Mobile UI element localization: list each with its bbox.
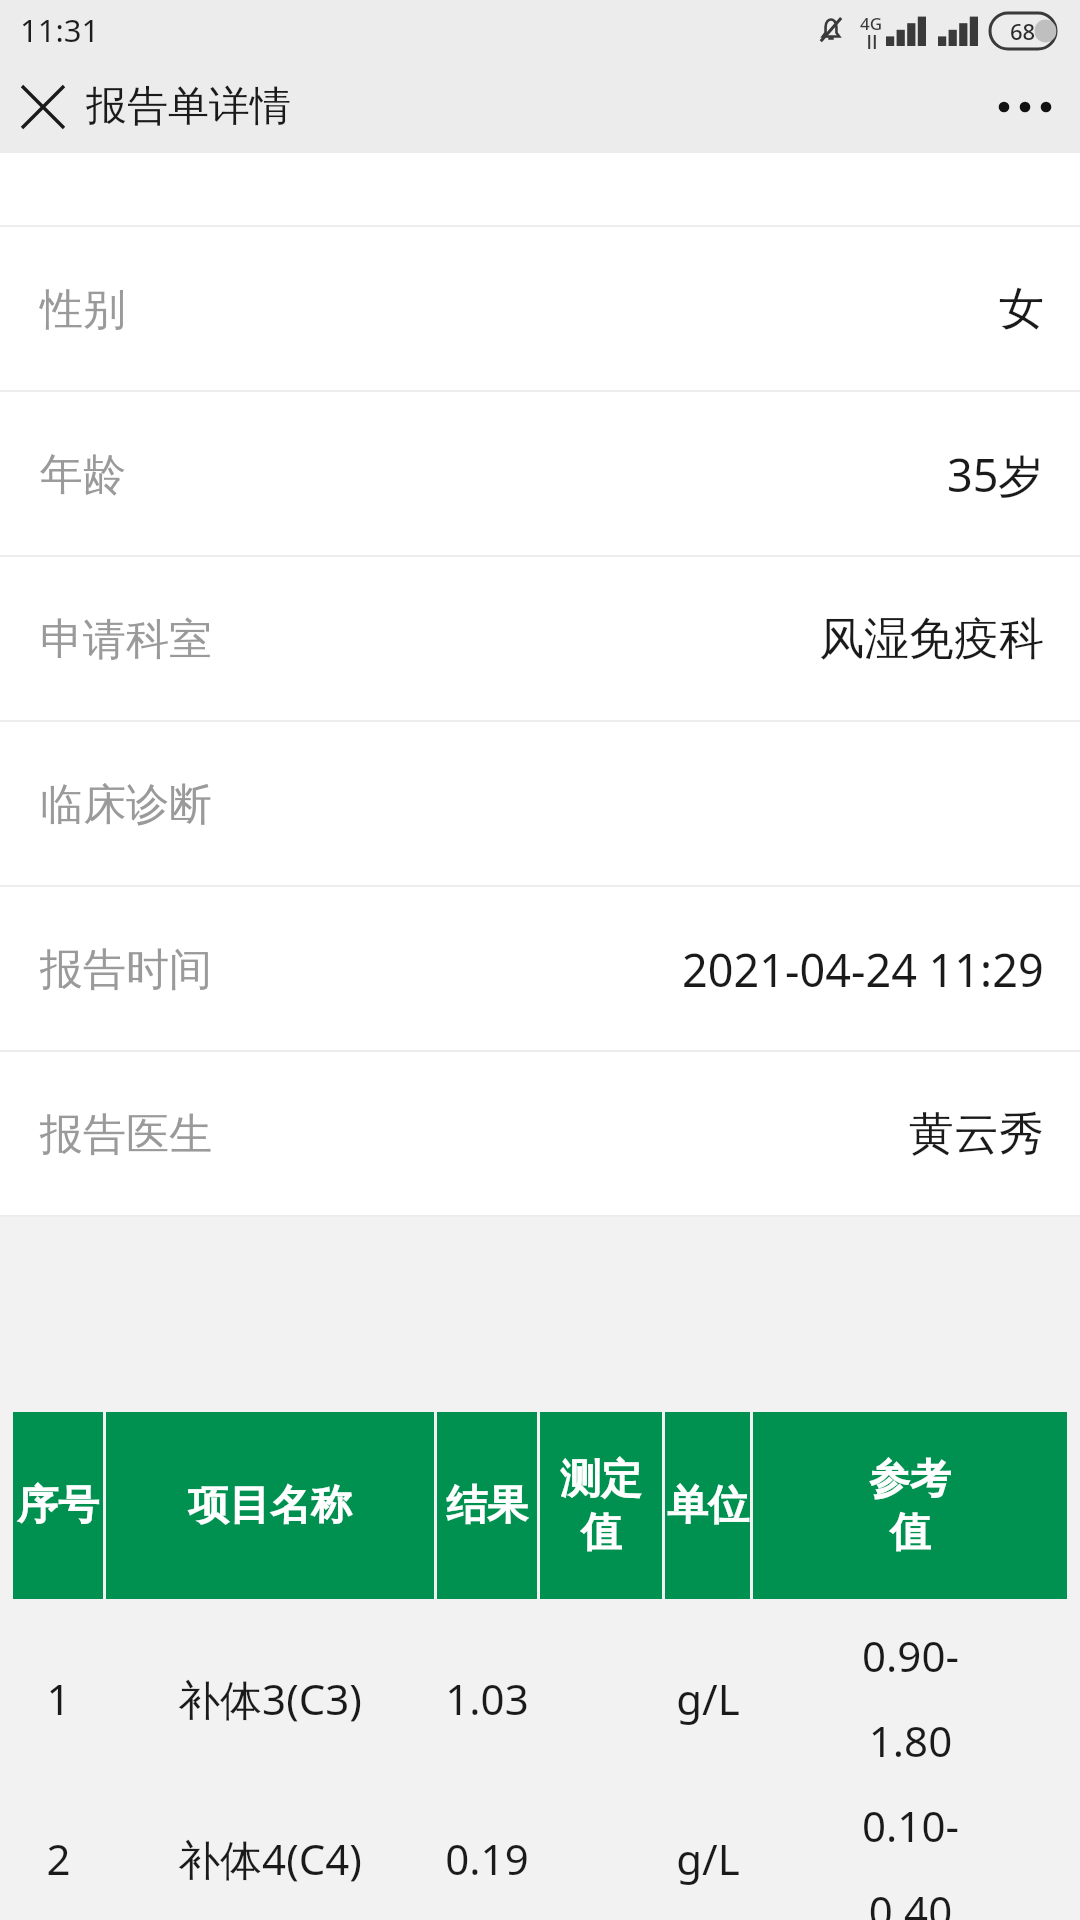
button[interactable]: 报告时间: [0, 887, 1080, 1052]
staticText: 0.19: [445, 1830, 529, 1887]
button[interactable]: 年龄: [0, 392, 1080, 557]
staticText: 参考 值: [869, 1454, 951, 1558]
staticText: 临床诊断: [40, 778, 212, 832]
button[interactable]: More options: [970, 60, 1080, 153]
staticText: 报告医生: [40, 1108, 212, 1162]
staticText: 1.03: [445, 1670, 529, 1727]
staticText: 项目名称: [188, 1480, 352, 1532]
staticText: 黄云秀: [909, 1106, 1044, 1163]
staticText: 11:31: [20, 9, 100, 51]
staticText: 报告单详情: [86, 81, 291, 133]
staticText: 测定 值: [560, 1454, 642, 1558]
staticText: 女: [999, 281, 1044, 338]
staticText: 2: [46, 1830, 71, 1887]
staticText: 风湿免疫科: [819, 611, 1044, 668]
button[interactable]: 性别: [0, 227, 1080, 392]
staticText: g/L: [676, 1670, 740, 1727]
staticText: 0.90- 1.80: [862, 1627, 959, 1770]
button[interactable]: 报告医生: [0, 1052, 1080, 1217]
staticText: 序号: [17, 1480, 99, 1532]
staticText: 2021-04-24 11:29: [682, 939, 1044, 1000]
staticText: 性别: [40, 283, 126, 337]
staticText: 4G: [860, 12, 883, 35]
button[interactable]: 临床诊断: [0, 722, 1080, 887]
button[interactable]: Close: [0, 64, 86, 150]
staticText: g/L: [676, 1830, 740, 1887]
button[interactable]: 申请科室: [0, 557, 1080, 722]
staticText: 1: [46, 1670, 71, 1727]
staticText: 年龄: [40, 448, 126, 502]
staticText: 68: [1010, 16, 1036, 46]
staticText: 报告时间: [40, 943, 212, 997]
staticText: 补体3(C3): [178, 1670, 362, 1727]
staticText: 结果: [446, 1480, 528, 1532]
staticText: 35岁: [947, 444, 1044, 505]
staticText: 单位: [667, 1480, 749, 1532]
staticText: 补体4(C4): [178, 1830, 362, 1887]
staticText: 0.10- 0.40: [862, 1797, 959, 1920]
staticText: 申请科室: [40, 613, 212, 667]
